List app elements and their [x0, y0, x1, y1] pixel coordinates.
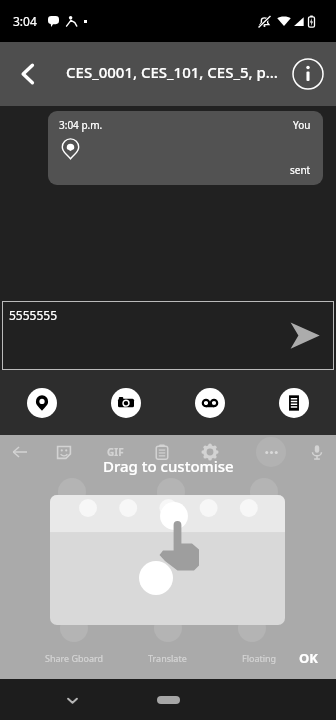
- button[interactable]: Record audio: [195, 388, 225, 418]
- staticText: You: [293, 118, 311, 132]
- staticText: 5555555: [9, 307, 58, 323]
- staticText: 3:04 p.m.: [59, 118, 103, 132]
- button[interactable]: Settings: [195, 437, 225, 467]
- button[interactable]: Conversation details: [280, 46, 336, 102]
- button[interactable]: Floating: [237, 643, 282, 673]
- button[interactable]: Translate: [143, 643, 192, 673]
- staticText: sent: [290, 163, 311, 177]
- button[interactable]: 5555555: [2, 301, 334, 370]
- staticText: GIF: [107, 445, 124, 459]
- button[interactable]: Stickers: [49, 437, 79, 467]
- button[interactable]: Back: [0, 46, 56, 102]
- button[interactable]: More options: [256, 437, 286, 467]
- button[interactable]: GIF: [100, 437, 130, 467]
- button[interactable]: Clipboard: [147, 437, 177, 467]
- button[interactable]: Attach file: [279, 388, 309, 418]
- staticText: Floating: [242, 652, 277, 664]
- button[interactable]: Take photo: [111, 388, 141, 418]
- button[interactable]: Home: [157, 696, 180, 704]
- staticText: Drag to customise: [103, 456, 234, 476]
- button[interactable]: Send: [285, 315, 325, 355]
- button[interactable]: Voice input: [302, 437, 332, 467]
- staticText: 3:04: [13, 13, 37, 29]
- staticText: Translate: [148, 652, 187, 664]
- staticText: OK: [299, 649, 318, 667]
- button[interactable]: Share location: [27, 388, 57, 418]
- button[interactable]: Back: [5, 437, 35, 467]
- button[interactable]: 3:04 p.m.: [48, 111, 323, 185]
- button[interactable]: OK: [292, 640, 325, 676]
- staticText: Share Gboard: [45, 652, 104, 664]
- button[interactable]: Hide keyboard: [56, 684, 88, 716]
- button[interactable]: Share Gboard: [40, 643, 109, 673]
- staticText: CES_0001, CES_101, CES_5, p…: [66, 62, 280, 82]
